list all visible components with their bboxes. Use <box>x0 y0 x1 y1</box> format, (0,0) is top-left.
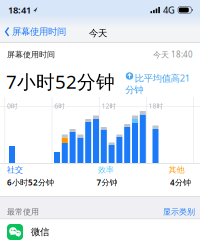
button[interactable]: 微信 <box>0 221 200 240</box>
staticText: 7分钟 <box>96 177 117 188</box>
staticText: 比平均值高21 <box>135 72 190 84</box>
staticText: 6时 <box>54 101 65 110</box>
staticText: 最常使用 <box>7 207 39 217</box>
staticText: 7小时52分钟 <box>6 69 115 94</box>
staticText: 18:41 <box>8 4 31 16</box>
staticText: 微信 <box>31 226 49 238</box>
staticText: 分钟 <box>125 84 143 96</box>
button[interactable]: 显示类别 <box>161 205 197 219</box>
staticText: 社交 <box>7 165 23 175</box>
staticText: 0时 <box>7 101 18 110</box>
staticText: 4G <box>163 4 175 16</box>
staticText: 其他 <box>168 165 184 175</box>
staticText: 屏幕使用时间 <box>7 50 55 59</box>
staticText: 屏幕使用时间 <box>12 26 66 37</box>
staticText: 6小时52分钟 <box>7 177 54 188</box>
staticText: 效率 <box>98 165 114 175</box>
staticText: 今天 18:40 <box>153 49 193 60</box>
staticText: 4分钟 <box>170 177 191 188</box>
staticText: 显示类别 <box>163 207 195 217</box>
button[interactable]: 屏幕使用时间 <box>0 26 66 37</box>
staticText: 今天 <box>89 27 107 39</box>
staticText: 12时 <box>101 101 116 110</box>
staticText: 18时 <box>149 101 164 110</box>
